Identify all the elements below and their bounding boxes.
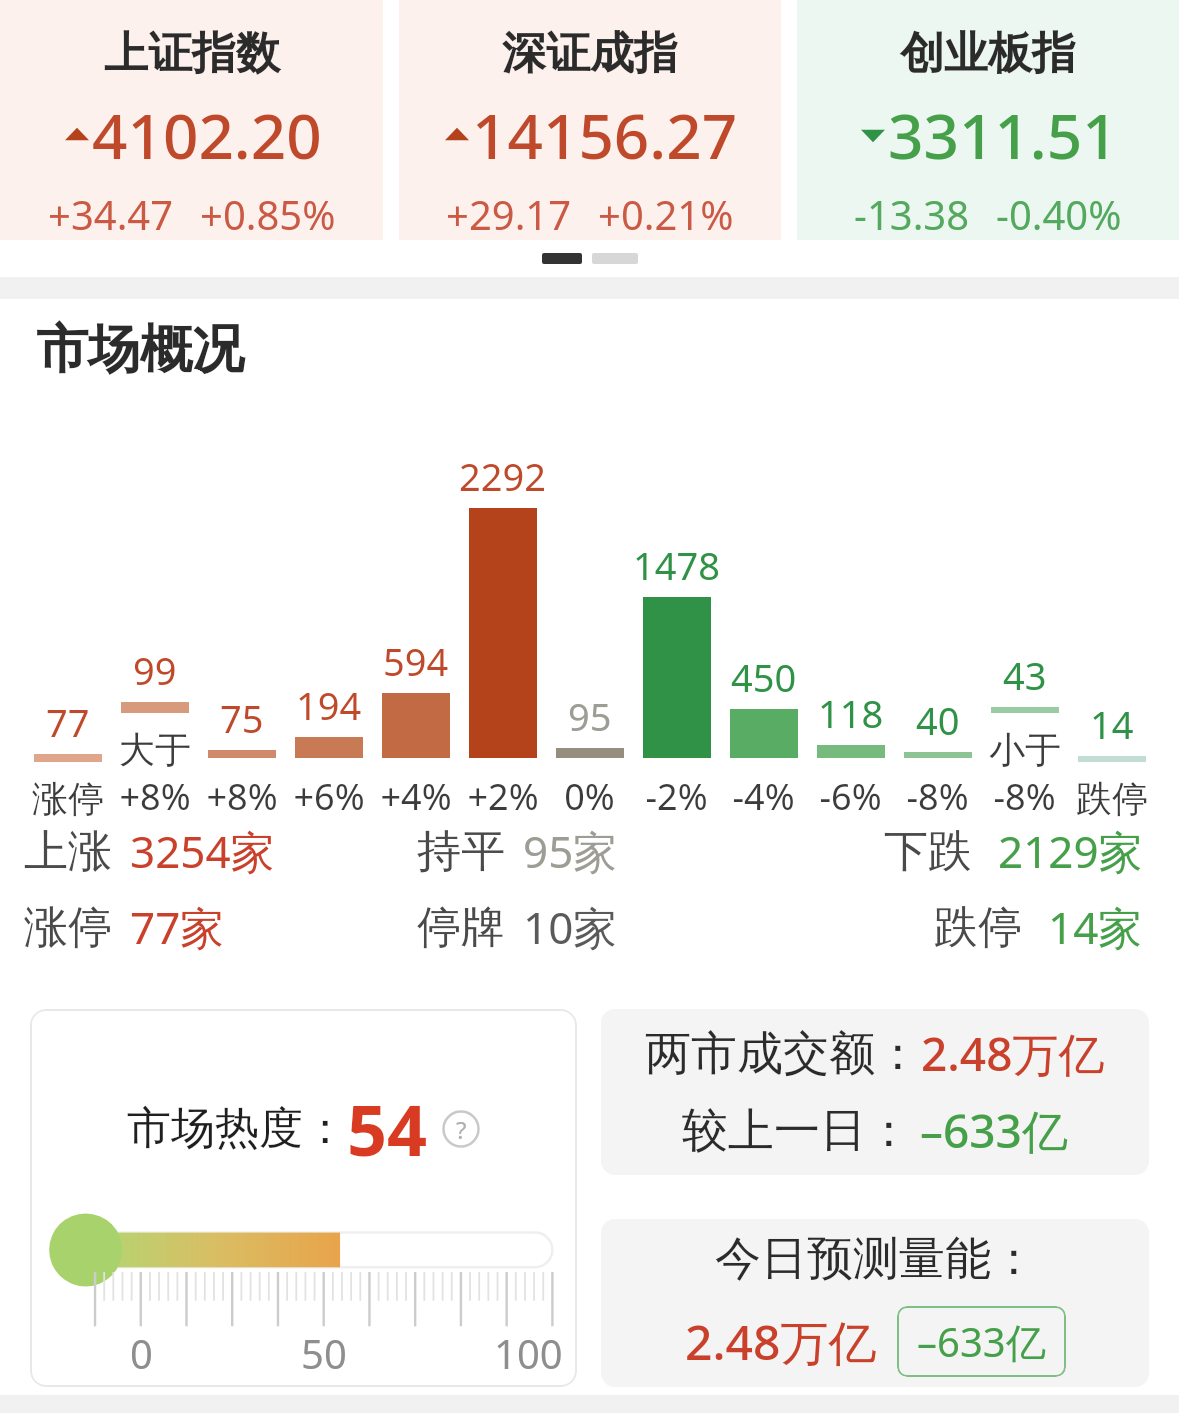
staticText: 跌停: [1076, 776, 1148, 821]
staticText: 50: [301, 1326, 347, 1380]
staticText: -2%: [645, 772, 708, 821]
staticText: 创业板指: [900, 26, 1076, 81]
button[interactable]: 今日预测量能：: [601, 1219, 1149, 1387]
button[interactable]: 上证指数: [0, 0, 383, 240]
staticText: -8%: [993, 772, 1056, 821]
staticText: 涨停: [32, 776, 104, 821]
staticText: 77: [46, 696, 90, 748]
staticText: 深证成指: [502, 26, 678, 81]
staticText: 14: [1090, 698, 1134, 750]
staticText: 0: [130, 1326, 153, 1380]
staticText: +6%: [293, 772, 365, 821]
staticText: 2129家: [998, 821, 1143, 881]
staticText: 今日预测量能：: [715, 1230, 1037, 1288]
staticText: -6%: [819, 772, 882, 821]
staticText: 3254家: [130, 821, 275, 881]
staticText: +34.47: [48, 187, 174, 240]
button[interactable]: 市场热度：: [30, 1009, 577, 1387]
staticText: 2.48万亿: [921, 1022, 1105, 1085]
staticText: 4102.20: [92, 93, 322, 177]
staticText: 75: [220, 692, 264, 744]
staticText: 43: [1003, 649, 1047, 701]
staticText: +2%: [467, 772, 539, 821]
staticText: 14156.27: [472, 93, 738, 177]
staticText: 两市成交额：: [645, 1025, 921, 1083]
staticText: 小于: [989, 727, 1061, 772]
staticText: 594: [383, 635, 449, 687]
staticText: 14家: [1048, 897, 1143, 957]
staticText: 大于: [119, 727, 191, 772]
staticText: 持平: [417, 824, 505, 879]
staticText: 较上一日：: [682, 1102, 912, 1160]
staticText: 跌停: [934, 900, 1022, 955]
staticText: +0.85%: [200, 187, 336, 240]
staticText: 118: [818, 687, 884, 739]
staticText: –633亿: [917, 1314, 1046, 1369]
button[interactable]: Page 1: [542, 253, 582, 264]
button[interactable]: 创业板指: [797, 0, 1179, 240]
staticText: +0.21%: [598, 187, 734, 240]
staticText: 77家: [130, 897, 225, 957]
staticText: 0%: [564, 772, 615, 821]
staticText: 1478: [633, 539, 720, 591]
staticText: 54: [347, 1081, 428, 1176]
staticText: -8%: [906, 772, 969, 821]
staticText: 停牌: [417, 900, 505, 955]
staticText: 2292: [459, 450, 546, 502]
staticText: ?: [456, 1113, 467, 1146]
staticText: 上证指数: [104, 26, 280, 81]
staticText: 市场概况: [36, 317, 244, 383]
button[interactable]: 两市成交额：: [601, 1009, 1149, 1175]
staticText: 95家: [523, 821, 618, 881]
staticText: 40: [916, 694, 960, 746]
button[interactable]: Help: [442, 1110, 480, 1148]
staticText: 3311.51: [888, 93, 1118, 177]
staticText: -4%: [732, 772, 795, 821]
staticText: 下跌: [884, 824, 972, 879]
staticText: +8%: [119, 772, 191, 821]
staticText: 2.48万亿: [685, 1309, 877, 1375]
staticText: 上涨: [24, 824, 112, 879]
staticText: +8%: [206, 772, 278, 821]
staticText: -13.38: [854, 187, 970, 240]
staticText: 市场热度：: [127, 1101, 347, 1156]
staticText: 涨停: [24, 900, 112, 955]
staticText: +29.17: [446, 187, 572, 240]
staticText: –633亿: [920, 1099, 1068, 1162]
staticText: 95: [568, 690, 612, 742]
staticText: 10家: [523, 897, 618, 957]
staticText: +4%: [380, 772, 452, 821]
staticText: 194: [296, 679, 362, 731]
staticText: 450: [731, 651, 797, 703]
button[interactable]: 深证成指: [399, 0, 781, 240]
staticText: 99: [133, 644, 177, 696]
staticText: -0.40%: [996, 187, 1122, 240]
staticText: 100: [494, 1326, 563, 1380]
